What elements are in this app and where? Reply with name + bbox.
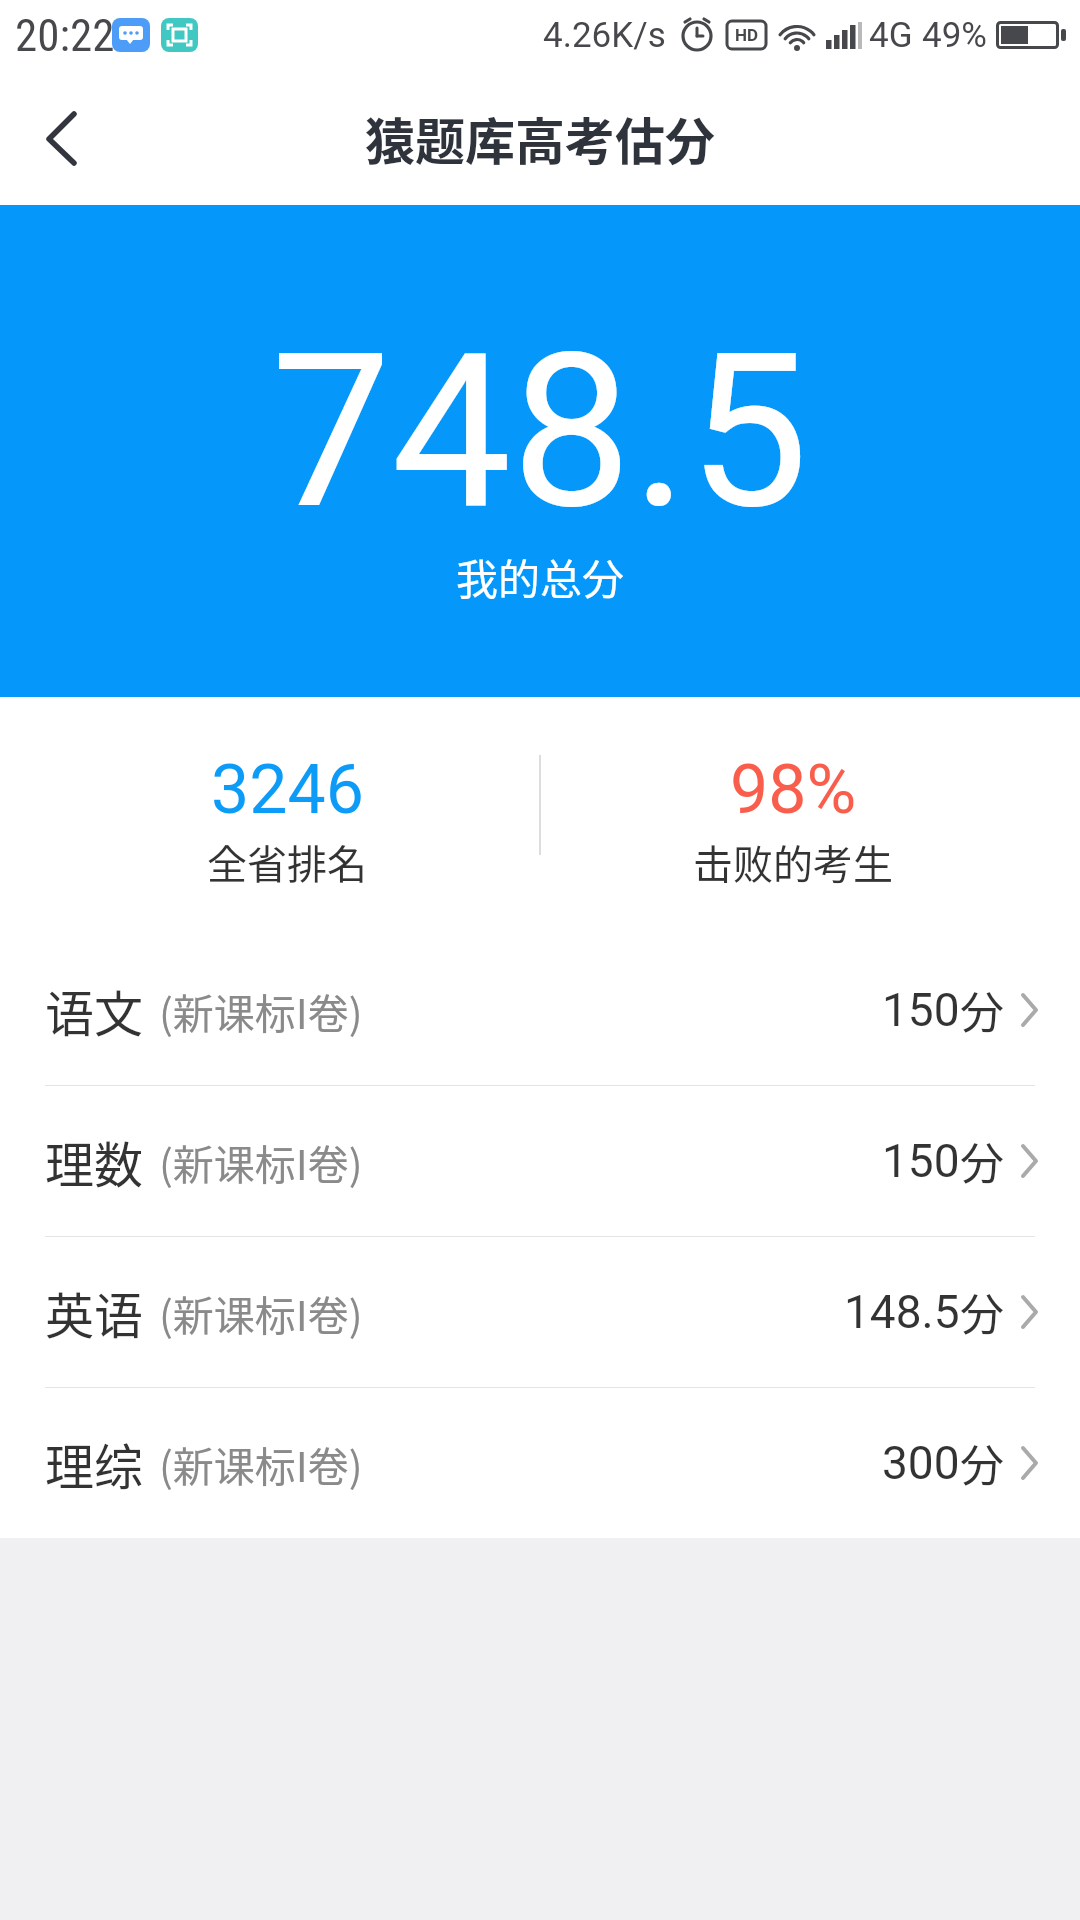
staticText: (新课标I卷) bbox=[159, 981, 363, 1040]
staticText: 我的总分 bbox=[456, 546, 625, 607]
staticText: 4.26K/s bbox=[543, 15, 666, 56]
button[interactable]: 理数 bbox=[0, 1086, 1080, 1236]
staticText: 理综 bbox=[45, 1428, 144, 1499]
staticText: 150 bbox=[882, 983, 960, 1037]
staticText: 分 bbox=[960, 978, 1004, 1042]
button[interactable] bbox=[30, 103, 100, 173]
staticText: 300 bbox=[882, 1436, 960, 1490]
staticText: HD bbox=[735, 25, 759, 45]
staticText: 分 bbox=[960, 1129, 1004, 1193]
staticText: 3246 bbox=[211, 750, 364, 820]
staticText: 分 bbox=[960, 1431, 1004, 1495]
staticText: 语文 bbox=[45, 975, 144, 1046]
staticText: 49% bbox=[922, 15, 987, 56]
staticText: (新课标I卷) bbox=[159, 1283, 363, 1342]
staticText: 理数 bbox=[45, 1126, 144, 1197]
staticText: 英语 bbox=[45, 1277, 144, 1348]
button[interactable]: 英语 bbox=[0, 1237, 1080, 1387]
staticText: 分 bbox=[960, 1280, 1004, 1344]
staticText: 150 bbox=[882, 1134, 960, 1188]
staticText: 748.5 bbox=[271, 306, 809, 557]
staticText: 猿题库高考估分 bbox=[365, 102, 715, 174]
staticText: 击败的考生 bbox=[693, 833, 893, 891]
staticText: (新课标I卷) bbox=[159, 1132, 363, 1191]
staticText: 148.5 bbox=[844, 1285, 960, 1339]
button[interactable]: 语文 bbox=[0, 935, 1080, 1085]
button[interactable]: 理综 bbox=[0, 1388, 1080, 1538]
staticText: 98% bbox=[730, 750, 857, 820]
staticText: 4G bbox=[869, 15, 913, 56]
staticText: 全省排名 bbox=[207, 833, 367, 891]
staticText: 20:22 bbox=[15, 9, 115, 62]
staticText: (新课标I卷) bbox=[159, 1434, 363, 1493]
